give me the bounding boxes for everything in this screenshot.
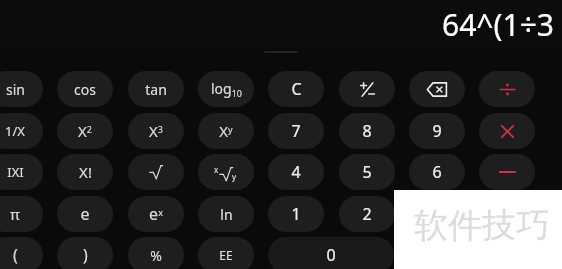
button[interactable]: sin bbox=[0, 71, 43, 107]
button[interactable]: X3 bbox=[128, 113, 184, 149]
staticText: 9 bbox=[432, 120, 442, 142]
button[interactable]: π bbox=[0, 196, 43, 232]
button[interactable]: IXI bbox=[0, 154, 43, 190]
button[interactable]: ex bbox=[128, 196, 184, 232]
staticText: tan bbox=[145, 80, 167, 99]
staticText: 5 bbox=[362, 161, 372, 183]
button[interactable]: Divide bbox=[479, 71, 535, 107]
button[interactable]: log10 bbox=[198, 71, 254, 107]
button[interactable]: 4 bbox=[268, 154, 324, 190]
staticText: x bbox=[214, 164, 219, 175]
button[interactable]: cos bbox=[57, 71, 113, 107]
button[interactable]: % bbox=[128, 237, 184, 269]
staticText: ex bbox=[149, 203, 163, 225]
button[interactable]: Minus bbox=[479, 154, 535, 190]
staticText: X3 bbox=[149, 121, 163, 141]
staticText: X! bbox=[79, 162, 92, 182]
button[interactable]: 9 bbox=[409, 113, 465, 149]
button[interactable]: 6 bbox=[409, 154, 465, 190]
button[interactable]: 0 bbox=[268, 237, 394, 269]
staticText: sin bbox=[6, 80, 25, 99]
button[interactable]: Plus minus bbox=[339, 71, 395, 107]
button[interactable]: X2 bbox=[57, 113, 113, 149]
button[interactable]: Backspace bbox=[409, 71, 465, 107]
staticText: X2 bbox=[78, 121, 92, 141]
staticText: 7 bbox=[291, 120, 301, 142]
staticText: 0 bbox=[326, 244, 336, 266]
button[interactable]: 1 bbox=[268, 196, 324, 232]
button[interactable]: 1/X bbox=[0, 113, 43, 149]
button[interactable]: ( bbox=[0, 237, 43, 269]
staticText: 2 bbox=[362, 203, 372, 225]
staticText: ( bbox=[13, 244, 18, 266]
staticText: C bbox=[291, 78, 302, 100]
staticText: ln bbox=[220, 205, 233, 224]
staticText: 软件技巧 bbox=[414, 204, 550, 247]
button[interactable]: ln bbox=[198, 196, 254, 232]
staticText: 1 bbox=[291, 203, 301, 225]
staticText: e bbox=[80, 203, 90, 225]
staticText: 8 bbox=[362, 120, 372, 142]
button[interactable]: 2 bbox=[339, 196, 395, 232]
button[interactable]: X! bbox=[57, 154, 113, 190]
button[interactable]: 8 bbox=[339, 113, 395, 149]
staticText: 6 bbox=[432, 161, 442, 183]
staticText: y bbox=[232, 171, 237, 182]
button[interactable]: 5 bbox=[339, 154, 395, 190]
staticText: 64^(1÷3 bbox=[442, 4, 554, 45]
button[interactable]: ) bbox=[57, 237, 113, 269]
staticText: EE bbox=[219, 247, 233, 263]
staticText: cos bbox=[74, 80, 96, 99]
button[interactable]: 7 bbox=[268, 113, 324, 149]
button[interactable]: tan bbox=[128, 71, 184, 107]
staticText: ) bbox=[83, 244, 88, 266]
staticText: log10 bbox=[211, 79, 242, 99]
button[interactable]: Nth root bbox=[198, 154, 254, 190]
button[interactable]: EE bbox=[198, 237, 254, 269]
staticText: 1/X bbox=[5, 122, 25, 140]
staticText: IXI bbox=[7, 163, 24, 181]
button[interactable]: e bbox=[57, 196, 113, 232]
button[interactable]: Multiply bbox=[479, 113, 535, 149]
staticText: π bbox=[10, 204, 20, 224]
staticText: 4 bbox=[291, 161, 301, 183]
staticText: Xy bbox=[219, 121, 233, 141]
button[interactable]: Square root bbox=[128, 154, 184, 190]
button[interactable]: Xy bbox=[198, 113, 254, 149]
button[interactable]: C bbox=[268, 71, 324, 107]
staticText: % bbox=[150, 246, 162, 265]
